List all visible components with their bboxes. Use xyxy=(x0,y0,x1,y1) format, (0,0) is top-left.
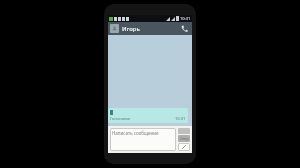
staticText: Голосовое xyxy=(110,116,131,121)
button[interactable]: Написать сообщение xyxy=(110,128,176,151)
button[interactable]: Attach xyxy=(178,143,190,151)
button[interactable]: Contact avatar xyxy=(110,24,119,33)
button[interactable]: Call xyxy=(179,23,190,34)
button[interactable]: Голосовое xyxy=(108,108,188,123)
staticText: Игорь xyxy=(122,25,179,33)
staticText: Написать сообщение xyxy=(112,130,159,136)
staticText: 10:31 xyxy=(180,16,191,21)
staticText: Отпр xyxy=(180,136,189,141)
button[interactable]: Send xyxy=(178,135,190,142)
staticText: 10:31 xyxy=(175,116,186,121)
